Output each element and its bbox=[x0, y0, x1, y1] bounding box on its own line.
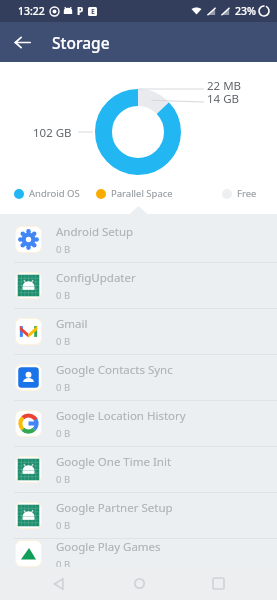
staticText: Free bbox=[237, 187, 257, 200]
staticText: E bbox=[91, 7, 95, 16]
button[interactable]: Home bbox=[119, 567, 159, 600]
staticText: ConfigUpdater bbox=[56, 270, 136, 286]
button[interactable]: Gmail bbox=[0, 309, 277, 354]
button[interactable]: Google Location History bbox=[0, 401, 277, 446]
button[interactable]: Free bbox=[222, 187, 257, 200]
staticText: 0 B bbox=[56, 381, 71, 394]
staticText: 23% bbox=[235, 4, 256, 18]
staticText: 0 B bbox=[56, 289, 71, 302]
staticText: 0 B bbox=[56, 427, 71, 440]
staticText: 0 B bbox=[56, 335, 71, 348]
button[interactable]: Back bbox=[39, 567, 79, 600]
staticText: 102 GB bbox=[33, 125, 72, 141]
button[interactable]: Google One Time Init bbox=[0, 447, 277, 492]
staticText: 0 B bbox=[56, 519, 71, 532]
button[interactable]: Back bbox=[6, 26, 38, 58]
staticText: 0 B bbox=[56, 473, 71, 486]
staticText: 0 B bbox=[56, 243, 71, 256]
staticText: Google Contacts Sync bbox=[56, 362, 173, 378]
button[interactable]: Google Partner Setup bbox=[0, 493, 277, 538]
staticText: Storage bbox=[52, 32, 110, 53]
button[interactable]: Google Contacts Sync bbox=[0, 355, 277, 400]
button[interactable]: ConfigUpdater bbox=[0, 263, 277, 308]
button[interactable]: Google Play Games bbox=[0, 539, 277, 567]
button[interactable]: Recents bbox=[198, 567, 238, 600]
staticText: Android Setup bbox=[56, 224, 134, 240]
staticText: Gmail bbox=[56, 316, 88, 332]
staticText: Google Partner Setup bbox=[56, 500, 173, 516]
staticText: 13:22 bbox=[18, 4, 45, 18]
staticText: Google One Time Init bbox=[56, 454, 172, 470]
staticText: Google Play Games bbox=[56, 539, 161, 555]
staticText: Google Location History bbox=[56, 408, 186, 424]
button[interactable]: Android Setup bbox=[0, 217, 277, 262]
staticText: 22 MB bbox=[207, 78, 242, 94]
button[interactable]: Parallel Space bbox=[96, 187, 173, 200]
staticText: Parallel Space bbox=[111, 187, 173, 200]
staticText: Android OS bbox=[29, 187, 80, 200]
button[interactable]: Android OS bbox=[14, 187, 80, 200]
staticText: P bbox=[77, 4, 84, 18]
staticText: 14 GB bbox=[207, 91, 239, 107]
staticText: 0 B bbox=[56, 558, 71, 567]
